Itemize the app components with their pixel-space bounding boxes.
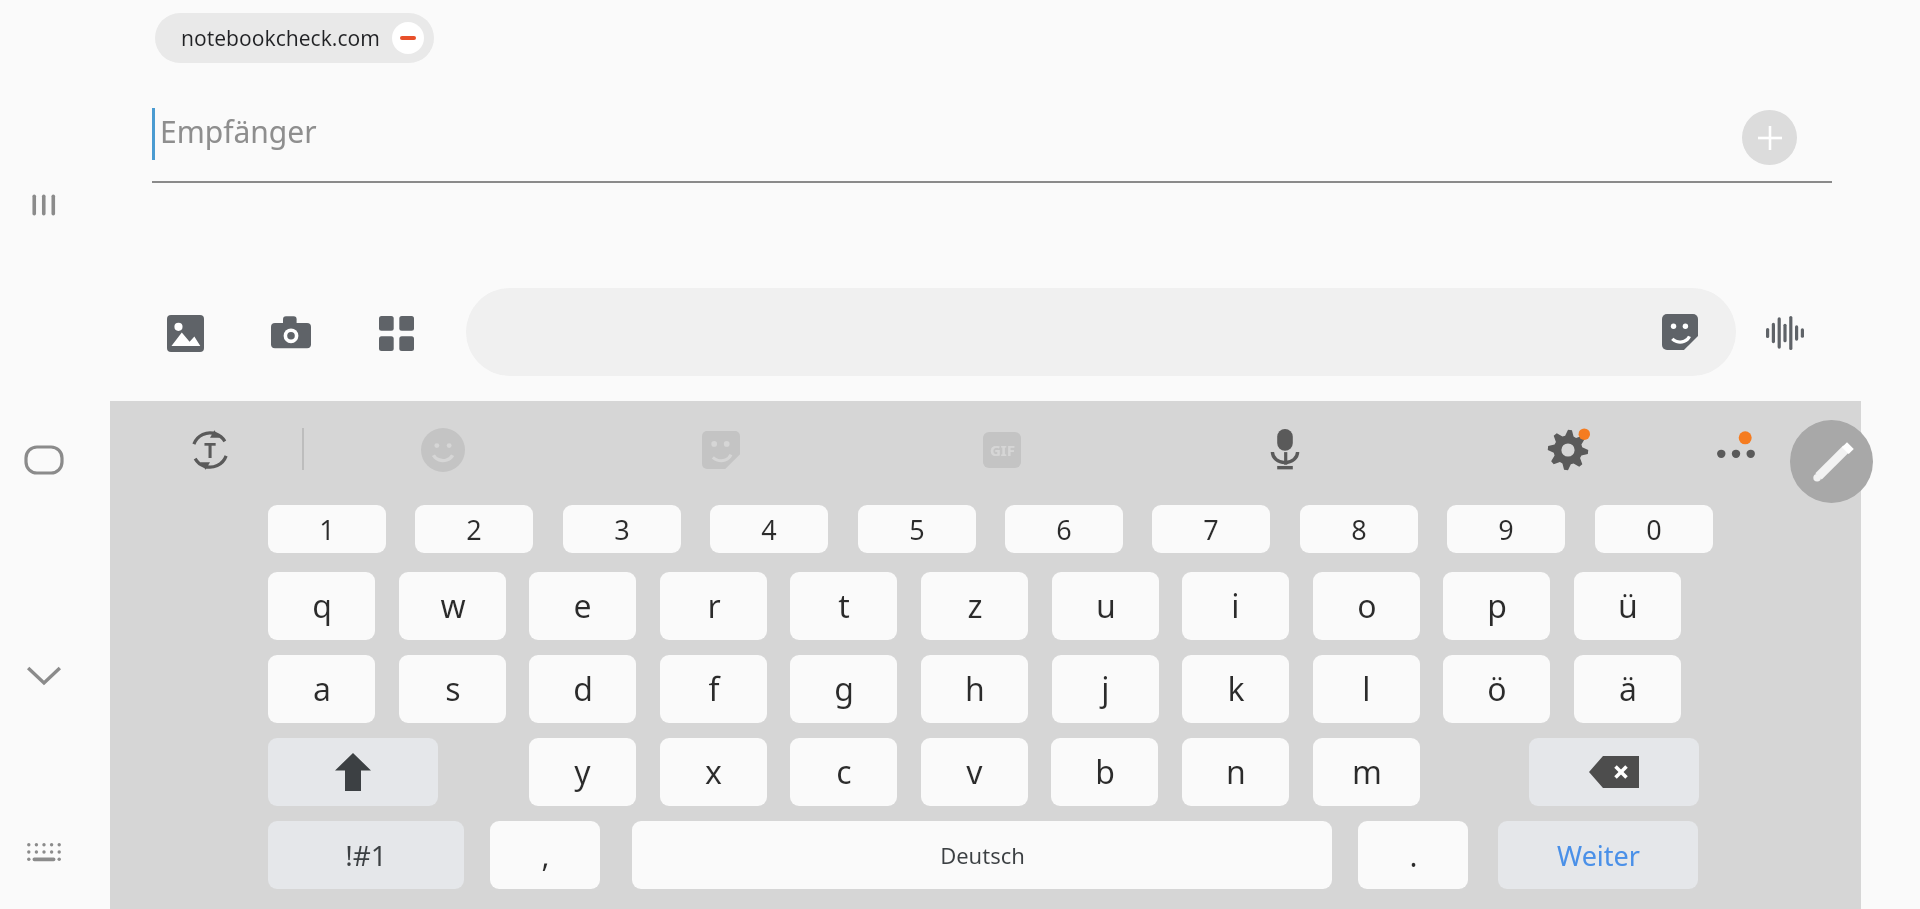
staticText: u [1096, 584, 1116, 628]
button[interactable]: More apps [366, 303, 426, 363]
button[interactable]: Add recipient [1742, 110, 1797, 165]
button[interactable]: k [1182, 655, 1289, 723]
button[interactable]: Translate [179, 419, 241, 481]
staticText: Weiter [1557, 837, 1640, 874]
staticText: w [440, 584, 466, 628]
button[interactable]: 2 [415, 505, 533, 553]
staticText: Deutsch [940, 840, 1025, 870]
button[interactable]: r [660, 572, 767, 640]
staticText: p [1487, 584, 1507, 628]
button[interactable]: 1 [268, 505, 386, 553]
button[interactable]: . [1358, 821, 1468, 889]
staticText: a [313, 667, 331, 711]
button[interactable]: ö [1443, 655, 1550, 723]
button[interactable]: Backspace [1529, 738, 1699, 806]
staticText: v [966, 750, 983, 794]
button[interactable]: c [790, 738, 897, 806]
button[interactable]: Stickers [690, 419, 752, 481]
staticText: 0 [1646, 511, 1662, 548]
button[interactable]: 0 [1595, 505, 1713, 553]
button[interactable]: 8 [1300, 505, 1418, 553]
button[interactable]: ä [1574, 655, 1681, 723]
staticText: m [1352, 750, 1382, 794]
button[interactable]: h [921, 655, 1028, 723]
button[interactable]: o [1313, 572, 1420, 640]
button[interactable]: l [1313, 655, 1420, 723]
button[interactable]: a [268, 655, 375, 723]
button[interactable]: g [790, 655, 897, 723]
staticText: 8 [1351, 511, 1367, 548]
staticText: !#1 [345, 836, 387, 874]
button[interactable]: s [399, 655, 506, 723]
staticText: b [1095, 750, 1115, 794]
staticText: s [445, 667, 461, 711]
button[interactable]: !#1 [268, 821, 464, 889]
button[interactable]: Weiter [1498, 821, 1698, 889]
staticText: t [838, 584, 850, 628]
button[interactable]: p [1443, 572, 1550, 640]
button[interactable]: ü [1574, 572, 1681, 640]
button[interactable]: t [790, 572, 897, 640]
button[interactable]: 4 [710, 505, 828, 553]
button[interactable]: 5 [858, 505, 976, 553]
button[interactable]: i [1182, 572, 1289, 640]
staticText: ä [1619, 667, 1637, 711]
button[interactable]: f [660, 655, 767, 723]
button[interactable]: Emoji [412, 419, 474, 481]
button[interactable]: m [1313, 738, 1420, 806]
button[interactable]: z [921, 572, 1028, 640]
button[interactable]: Space, Deutsch [632, 821, 1332, 889]
staticText: notebookcheck.com [181, 24, 380, 53]
button[interactable]: y [529, 738, 636, 806]
button[interactable]: Hide keyboard [14, 822, 74, 882]
button[interactable]: j [1052, 655, 1159, 723]
button[interactable]: Home [14, 430, 74, 490]
staticText: T [204, 436, 217, 465]
button[interactable]: u [1052, 572, 1159, 640]
button[interactable]: Voice input [1254, 419, 1316, 481]
staticText: e [573, 584, 592, 628]
button[interactable]: Handwriting [1790, 420, 1873, 503]
button[interactable]: Voice message [1755, 303, 1815, 363]
button[interactable]: 7 [1152, 505, 1270, 553]
button[interactable]: Sticker [466, 288, 1736, 376]
button[interactable]: n [1182, 738, 1289, 806]
button[interactable]: v [921, 738, 1028, 806]
staticText: k [1227, 667, 1245, 711]
staticText: 2 [466, 511, 482, 548]
staticText: o [1357, 584, 1377, 628]
staticText: , [541, 835, 550, 876]
button[interactable]: Recents [14, 175, 74, 235]
button[interactable]: Shift [268, 738, 438, 806]
staticText: j [1101, 667, 1110, 711]
button[interactable]: More options [1705, 419, 1767, 481]
button[interactable]: Back [14, 645, 74, 705]
staticText: c [836, 750, 852, 794]
staticText: ü [1618, 584, 1638, 628]
button[interactable]: notebookcheck.com [155, 13, 434, 63]
button[interactable]: Sticker [1656, 308, 1704, 356]
button[interactable]: w [399, 572, 506, 640]
button[interactable]: Gallery [155, 303, 215, 363]
staticText: 7 [1203, 511, 1219, 548]
button[interactable]: b [1051, 738, 1158, 806]
button[interactable]: , [490, 821, 600, 889]
button[interactable]: q [268, 572, 375, 640]
button[interactable]: 9 [1447, 505, 1565, 553]
staticText: r [707, 584, 721, 628]
staticText: 9 [1498, 511, 1514, 548]
staticText: n [1226, 750, 1246, 794]
button[interactable]: GIF [971, 419, 1033, 481]
staticText: d [573, 667, 593, 711]
button[interactable]: 6 [1005, 505, 1123, 553]
staticText: GIF [990, 440, 1015, 460]
button[interactable]: Settings [1537, 419, 1599, 481]
staticText: ö [1487, 667, 1507, 711]
button[interactable]: d [529, 655, 636, 723]
button[interactable]: Camera [261, 303, 321, 363]
staticText: x [705, 750, 722, 794]
button[interactable]: x [660, 738, 767, 806]
staticText: Empfänger [160, 111, 317, 152]
button[interactable]: e [529, 572, 636, 640]
button[interactable]: 3 [563, 505, 681, 553]
